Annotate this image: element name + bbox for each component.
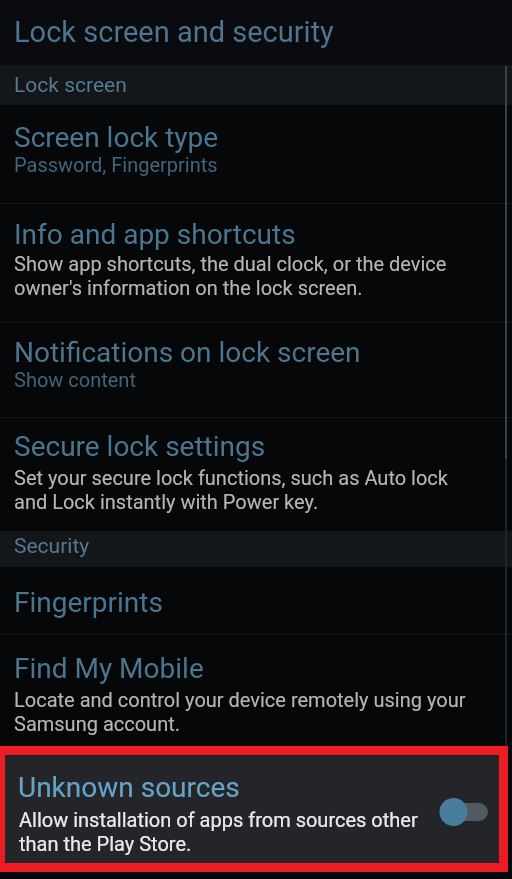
staticText: Screen lock type xyxy=(14,121,219,154)
staticText: Samsung account. xyxy=(14,712,180,735)
staticText: Info and app shortcuts xyxy=(14,218,296,251)
staticText: Security xyxy=(14,534,90,559)
button[interactable] xyxy=(0,567,512,634)
staticText: Fingerprints xyxy=(14,586,163,619)
button[interactable] xyxy=(0,418,512,531)
staticText: Secure lock settings xyxy=(14,430,266,463)
staticText: Allow installation of apps from sources … xyxy=(19,808,418,831)
button[interactable] xyxy=(425,788,500,836)
staticText: owner's information on the lock screen. xyxy=(14,276,363,299)
staticText: Show app shortcuts, the dual clock, or t… xyxy=(14,252,447,275)
staticText: than the Play Store. xyxy=(19,832,192,855)
button[interactable] xyxy=(0,323,512,417)
staticText: Notifications on lock screen xyxy=(14,336,361,369)
staticText: Lock screen xyxy=(14,73,127,98)
staticText: and Lock instantly with Power key. xyxy=(14,490,319,513)
staticText: Password, Fingerprints xyxy=(14,153,218,176)
staticText: Find My Mobile xyxy=(14,652,204,685)
button[interactable] xyxy=(0,105,512,203)
staticText: Set your secure lock functions, such as … xyxy=(14,466,448,489)
staticText: Locate and control your device remotely … xyxy=(14,688,466,711)
button[interactable] xyxy=(5,755,499,863)
button[interactable] xyxy=(0,0,512,65)
staticText: Unknown sources xyxy=(18,771,240,804)
staticText: Show content xyxy=(14,368,136,391)
staticText: Lock screen and security xyxy=(14,15,334,49)
button[interactable] xyxy=(0,635,512,746)
button[interactable] xyxy=(0,204,512,322)
